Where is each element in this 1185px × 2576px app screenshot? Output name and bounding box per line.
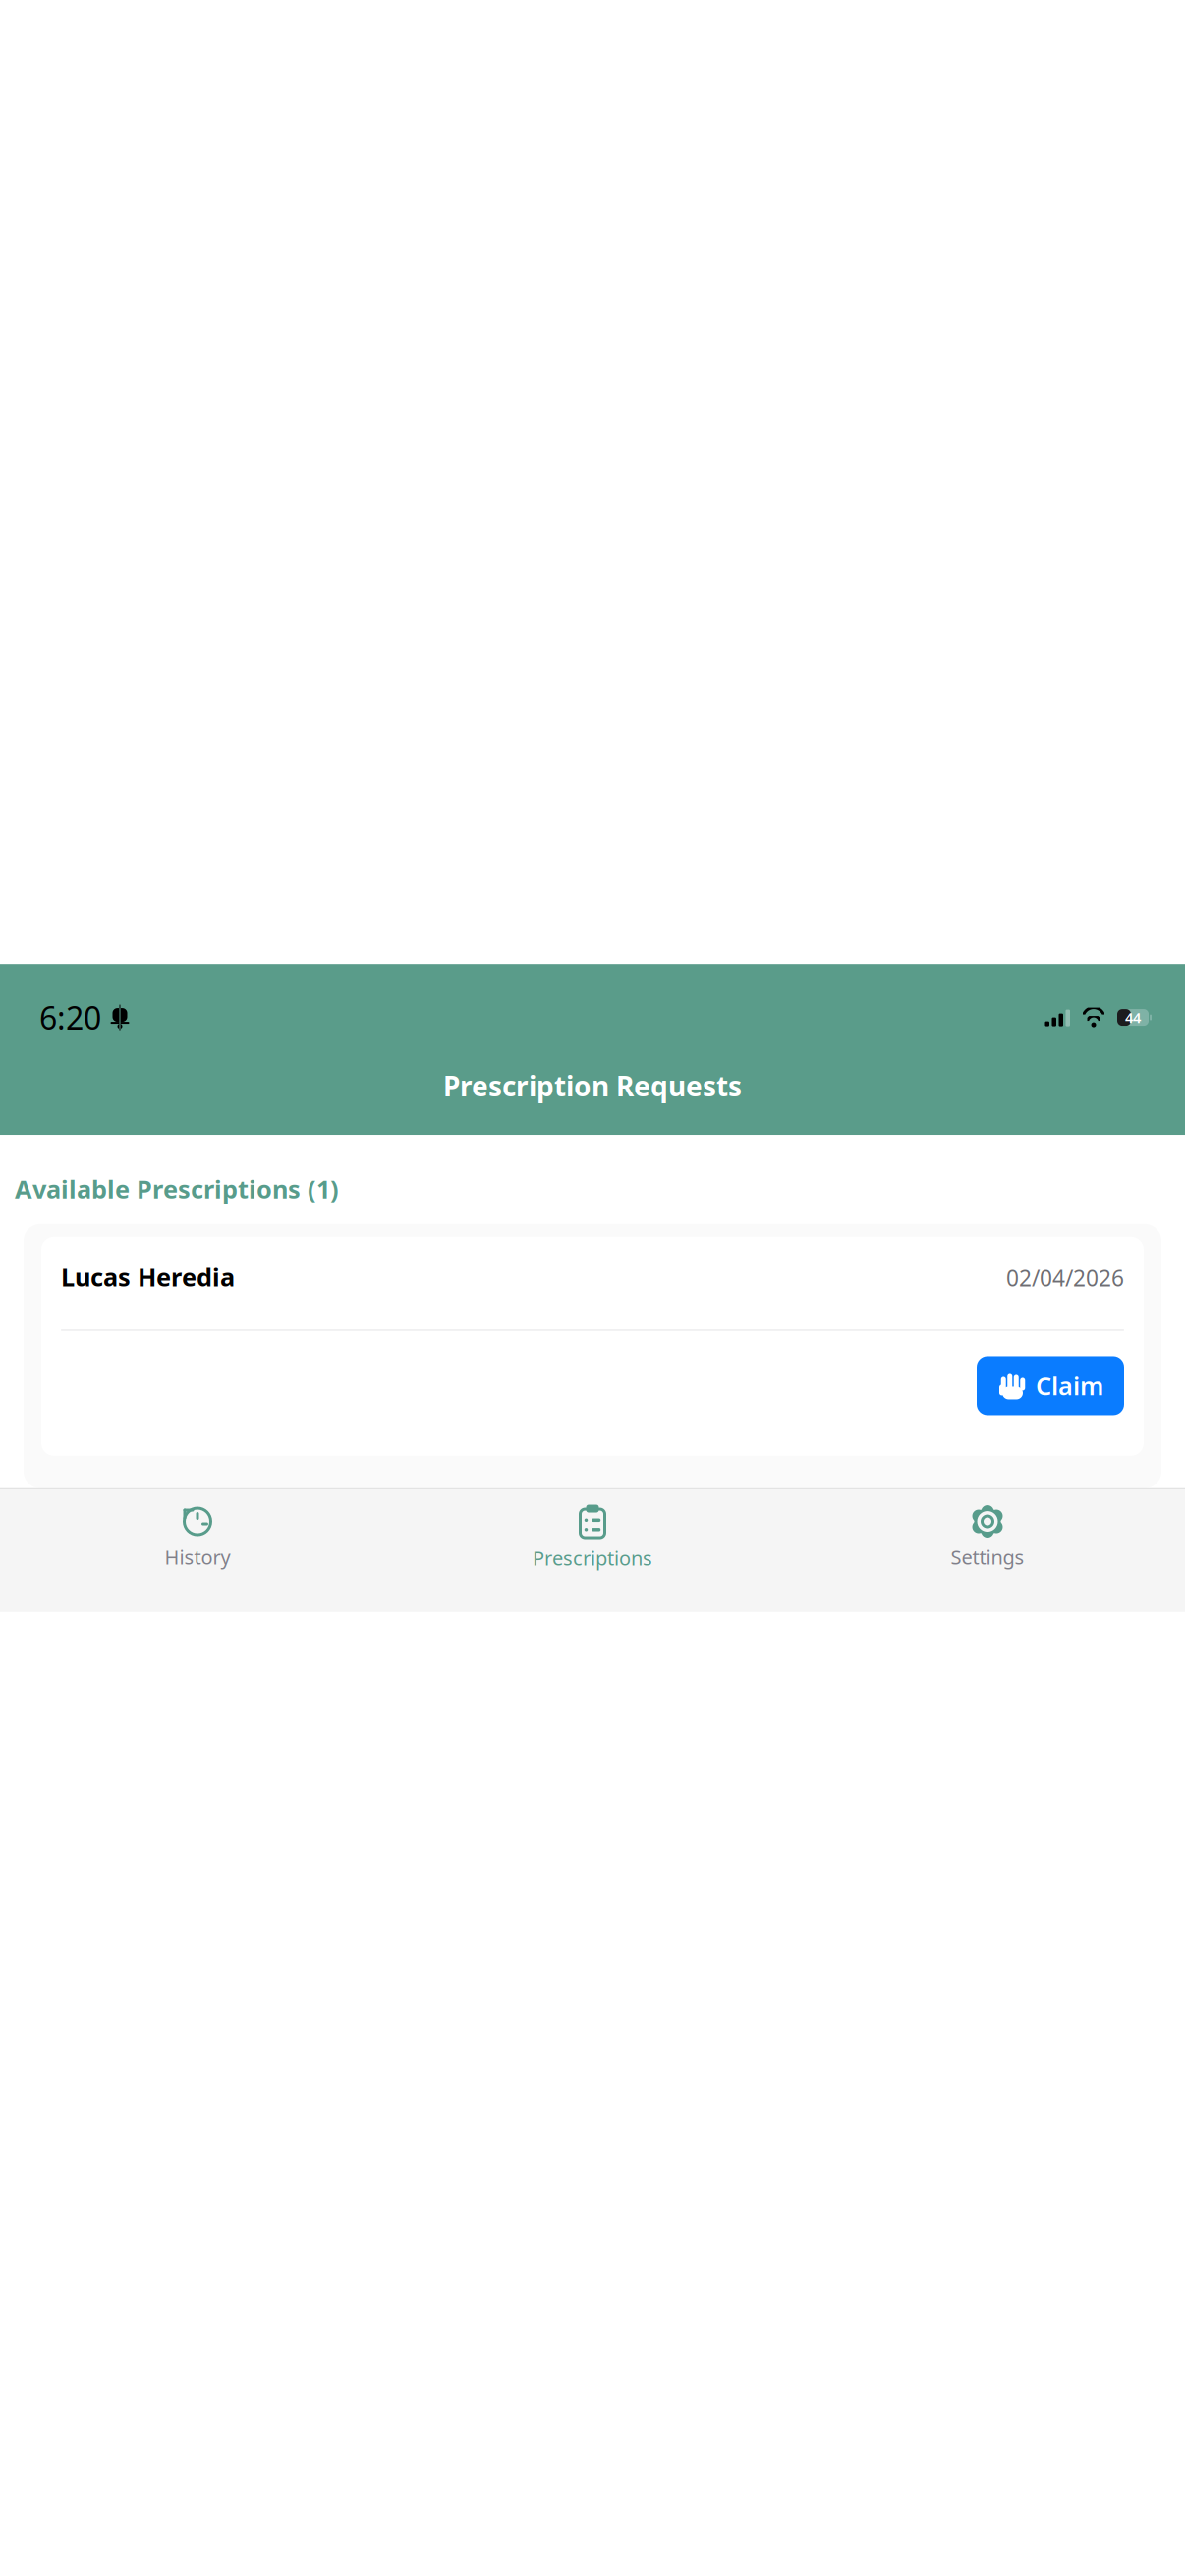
staticText: 02/04/2026 [1006,1263,1124,1293]
staticText: Available Prescriptions (1) [15,1172,339,1205]
staticText: Lucas Heredia [61,1260,235,1293]
button[interactable]: Prescriptions [395,1503,790,1572]
staticText: Claim [1036,1369,1103,1402]
staticText: Settings [951,1544,1024,1570]
button[interactable]: Settings [790,1503,1185,1572]
staticText: 6:20 [39,997,101,1038]
staticText: History [165,1544,230,1570]
button[interactable]: Claim [977,1356,1124,1415]
staticText: Prescription Requests [443,1068,742,1104]
staticText: 44 [1125,1008,1141,1027]
button[interactable]: History [0,1503,395,1572]
staticText: Prescriptions [533,1545,652,1571]
